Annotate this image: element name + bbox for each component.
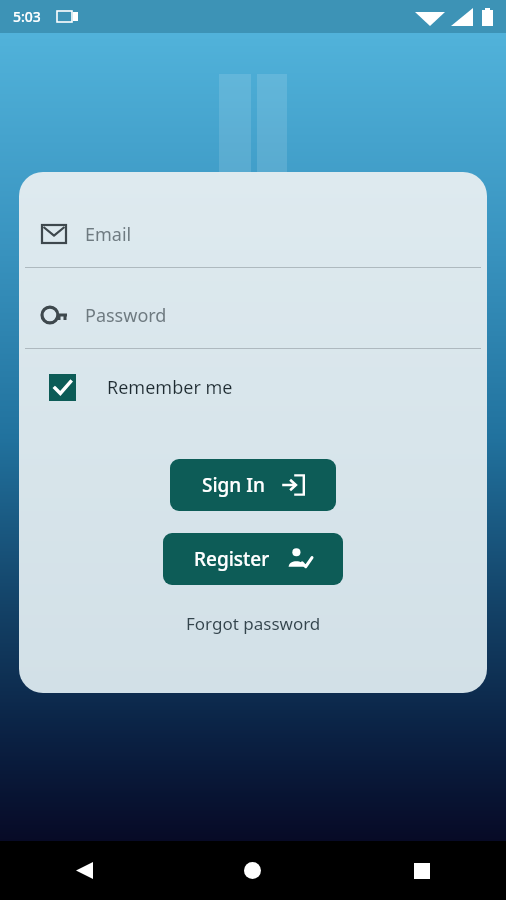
other: Register	[286, 547, 312, 571]
button[interactable]: Back	[0, 841, 168, 900]
button[interactable]: Email	[19, 214, 487, 254]
button[interactable]: Recents	[337, 841, 506, 900]
button[interactable]: Remember me	[19, 361, 487, 413]
other: Email	[41, 224, 67, 244]
staticText: Email	[85, 222, 132, 247]
button[interactable]: Sign In	[170, 459, 336, 511]
staticText: Sign In	[202, 472, 265, 498]
staticText: Remember me	[107, 375, 233, 400]
staticText: Register	[194, 546, 270, 572]
staticText: 5:03	[13, 7, 41, 26]
staticText: Password	[85, 303, 167, 328]
button[interactable]: Forgot password	[174, 607, 333, 640]
other: Password	[41, 306, 67, 324]
other: Sign In	[281, 473, 305, 497]
staticText: Forgot password	[186, 612, 321, 635]
button[interactable]: Password	[19, 295, 487, 335]
button[interactable]: Register	[163, 533, 343, 585]
button[interactable]: Home	[168, 841, 337, 900]
